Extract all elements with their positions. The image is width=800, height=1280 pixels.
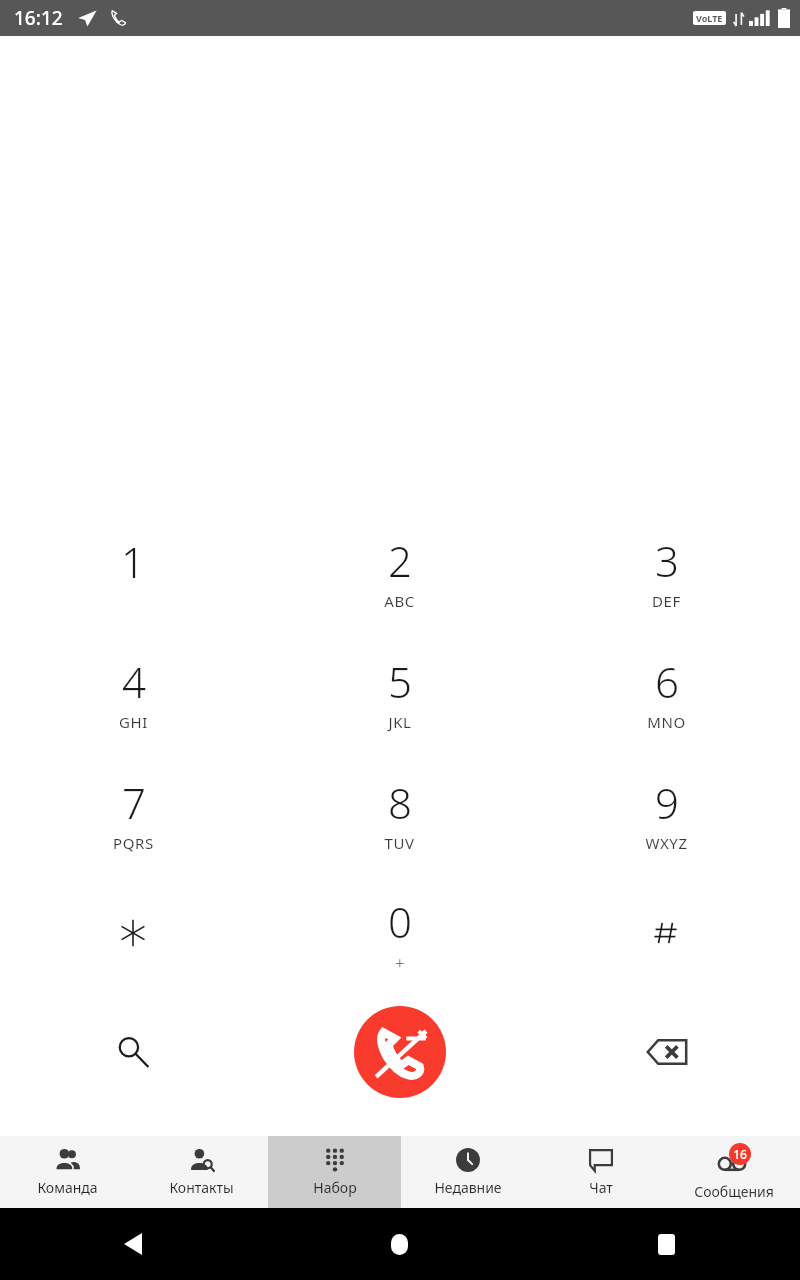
staticText: 1 xyxy=(121,533,145,590)
staticText: Набор xyxy=(313,1178,357,1197)
staticText: ABC xyxy=(384,591,415,611)
button[interactable]: 3 xyxy=(533,511,800,632)
button[interactable]: 6 xyxy=(533,632,800,753)
staticText: 4 xyxy=(122,653,146,710)
button[interactable]: Команда xyxy=(0,1136,134,1208)
button[interactable]: 0 xyxy=(266,874,533,992)
staticText: GHI xyxy=(119,712,148,732)
button[interactable]: Главный экран xyxy=(266,1208,533,1280)
button[interactable]: Недавние xyxy=(401,1136,534,1208)
button[interactable]: 16 xyxy=(667,1136,800,1208)
staticText: 16:12 xyxy=(14,5,63,31)
staticText: 8 xyxy=(388,774,412,831)
staticText: 9 xyxy=(655,774,679,831)
staticText: VoLTE xyxy=(696,12,723,24)
button[interactable]: Удалить xyxy=(533,992,800,1112)
button[interactable] xyxy=(533,874,800,992)
button[interactable]: Поиск xyxy=(0,992,266,1112)
staticText: Сообщения xyxy=(694,1182,774,1201)
button[interactable]: Контакты xyxy=(134,1136,268,1208)
button[interactable]: Последние приложения xyxy=(533,1208,800,1280)
staticText: JKL xyxy=(388,712,412,732)
staticText: Команда xyxy=(37,1178,98,1197)
button[interactable]: 4 xyxy=(0,632,266,753)
button[interactable]: Набор xyxy=(268,1136,401,1208)
button[interactable]: 1 xyxy=(0,511,266,632)
button[interactable] xyxy=(0,874,266,992)
staticText: Чат xyxy=(589,1178,613,1197)
staticText: DEF xyxy=(652,591,681,611)
button[interactable]: 9 xyxy=(533,753,800,874)
staticText: Недавние xyxy=(434,1178,502,1197)
staticText: 6 xyxy=(655,653,679,710)
button[interactable]: Чат xyxy=(534,1136,667,1208)
button[interactable]: 7 xyxy=(0,753,266,874)
staticText: WXYZ xyxy=(645,833,688,853)
staticText: TUV xyxy=(384,833,415,853)
staticText: 3 xyxy=(655,532,679,589)
staticText: MNO xyxy=(647,712,686,732)
staticText: 5 xyxy=(388,653,412,710)
button[interactable]: 5 xyxy=(266,632,533,753)
button[interactable]: 8 xyxy=(266,753,533,874)
staticText: 2 xyxy=(388,532,412,589)
button[interactable]: 2 xyxy=(266,511,533,632)
staticText: 0 xyxy=(388,893,412,950)
staticText: PQRS xyxy=(113,833,154,853)
staticText: Контакты xyxy=(169,1178,234,1197)
staticText: + xyxy=(395,951,405,974)
button[interactable]: Назад xyxy=(0,1208,266,1280)
staticText: 16 xyxy=(733,1146,747,1162)
staticText: 7 xyxy=(122,774,146,831)
button[interactable]: Вызов xyxy=(354,1006,446,1098)
